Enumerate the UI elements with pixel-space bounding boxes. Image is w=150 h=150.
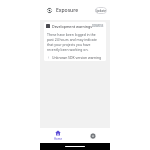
staticText: Unknown SDK version warning bbox=[52, 55, 102, 60]
staticText: Exposure bbox=[56, 7, 79, 14]
staticText: Home bbox=[54, 137, 63, 141]
button[interactable]: Home bbox=[47, 128, 69, 143]
button[interactable]: Update bbox=[95, 7, 107, 14]
button[interactable]: Unknown SDK version warning bbox=[44, 54, 106, 61]
button[interactable]: App icon bbox=[43, 4, 55, 16]
staticText: DISMISS bbox=[92, 24, 104, 28]
button[interactable]: Development warnings bbox=[44, 22, 106, 30]
button[interactable]: Settings bbox=[82, 128, 104, 143]
staticText: Update bbox=[95, 9, 107, 13]
staticText: Development warnings bbox=[52, 24, 92, 29]
staticText: These have been logged in the past 24 ho… bbox=[47, 32, 103, 52]
